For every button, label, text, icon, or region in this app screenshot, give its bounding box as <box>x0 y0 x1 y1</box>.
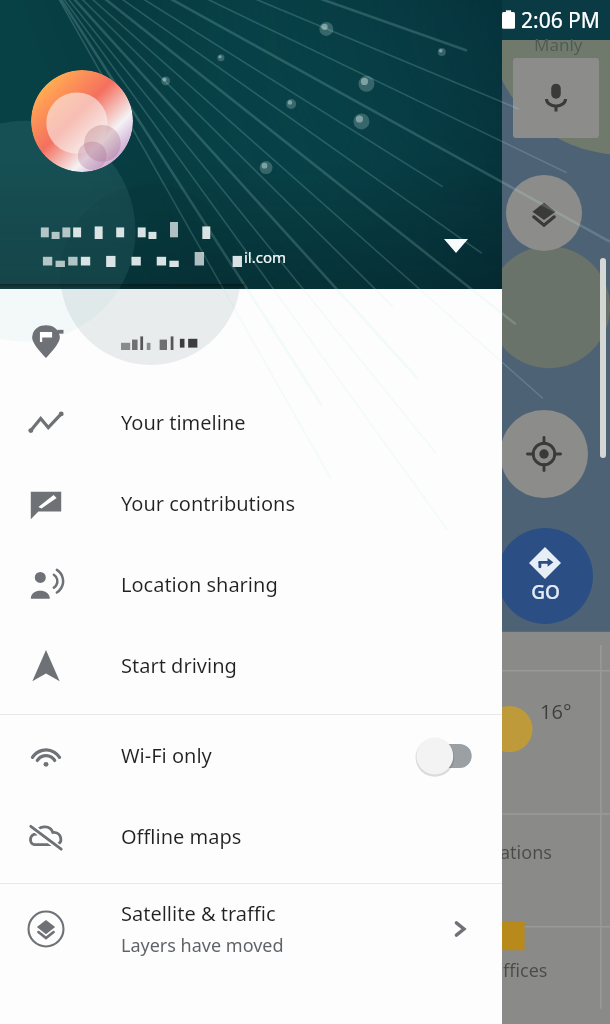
button[interactable]: Map layers <box>506 175 582 251</box>
button[interactable]: Satellite & traffic <box>0 884 502 974</box>
staticText: Satellite & traffic <box>121 900 276 927</box>
staticText: Your timeline <box>121 409 246 436</box>
button[interactable]: Open satellite and traffic <box>440 909 480 949</box>
staticText: Your contributions <box>121 490 296 517</box>
button[interactable]: Voice search <box>513 58 599 138</box>
staticText: 2:06 PM <box>521 6 600 35</box>
staticText: ations <box>500 840 552 865</box>
staticText: il.com <box>244 247 287 267</box>
button[interactable]: Your timeline <box>0 382 502 463</box>
staticText: Manly <box>534 33 583 56</box>
button[interactable]: Go, start navigation <box>497 528 593 624</box>
button[interactable]: Offline maps <box>0 796 502 877</box>
button[interactable]: Account photo <box>31 70 133 172</box>
button[interactable]: Your contributions <box>0 463 502 544</box>
staticText: Offline maps <box>121 823 242 850</box>
staticText: GO <box>531 579 560 605</box>
staticText: Layers have moved <box>121 933 284 958</box>
button[interactable]: Wi-Fi only toggle, off <box>416 736 480 776</box>
button[interactable]: My location <box>500 410 588 498</box>
button[interactable]: Expand account list <box>432 222 480 270</box>
staticText: 16° <box>540 698 572 725</box>
button[interactable]: Wi-Fi only <box>0 715 502 796</box>
staticText: Wi-Fi only <box>121 742 212 769</box>
button[interactable]: Location sharing <box>0 544 502 625</box>
staticText: Start driving <box>121 652 237 679</box>
staticText: Location sharing <box>121 571 278 598</box>
button[interactable]: Start driving <box>0 625 502 706</box>
button[interactable] <box>0 301 502 382</box>
staticText: ffices <box>503 958 548 983</box>
